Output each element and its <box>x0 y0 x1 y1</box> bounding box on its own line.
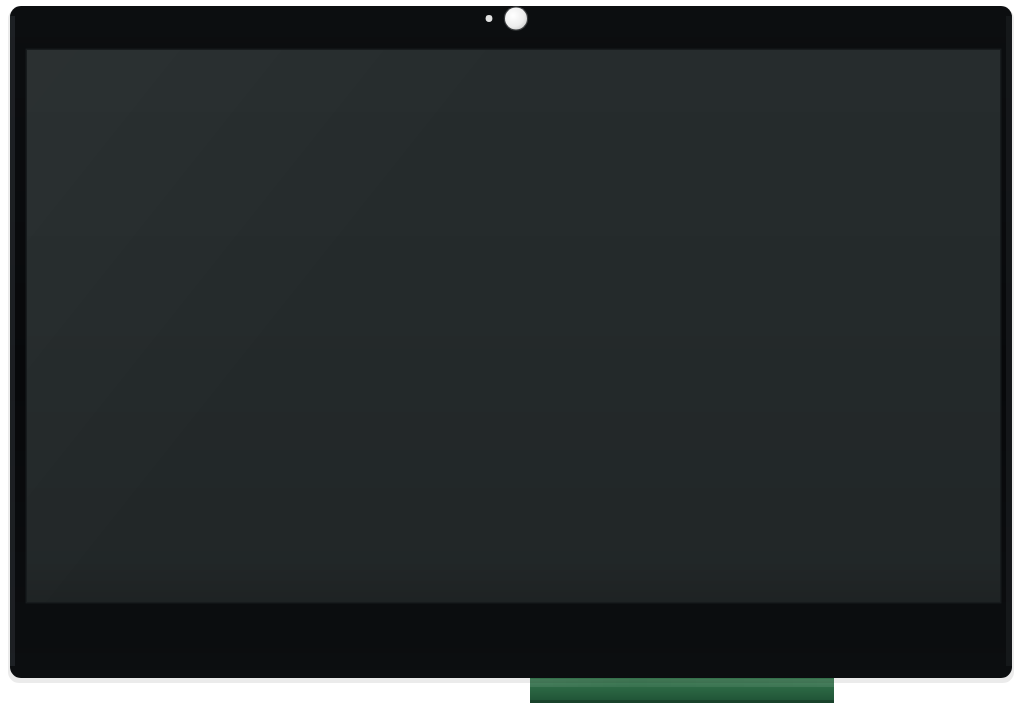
button[interactable]: Laptop LCD display panel assembly <box>0 0 1024 708</box>
